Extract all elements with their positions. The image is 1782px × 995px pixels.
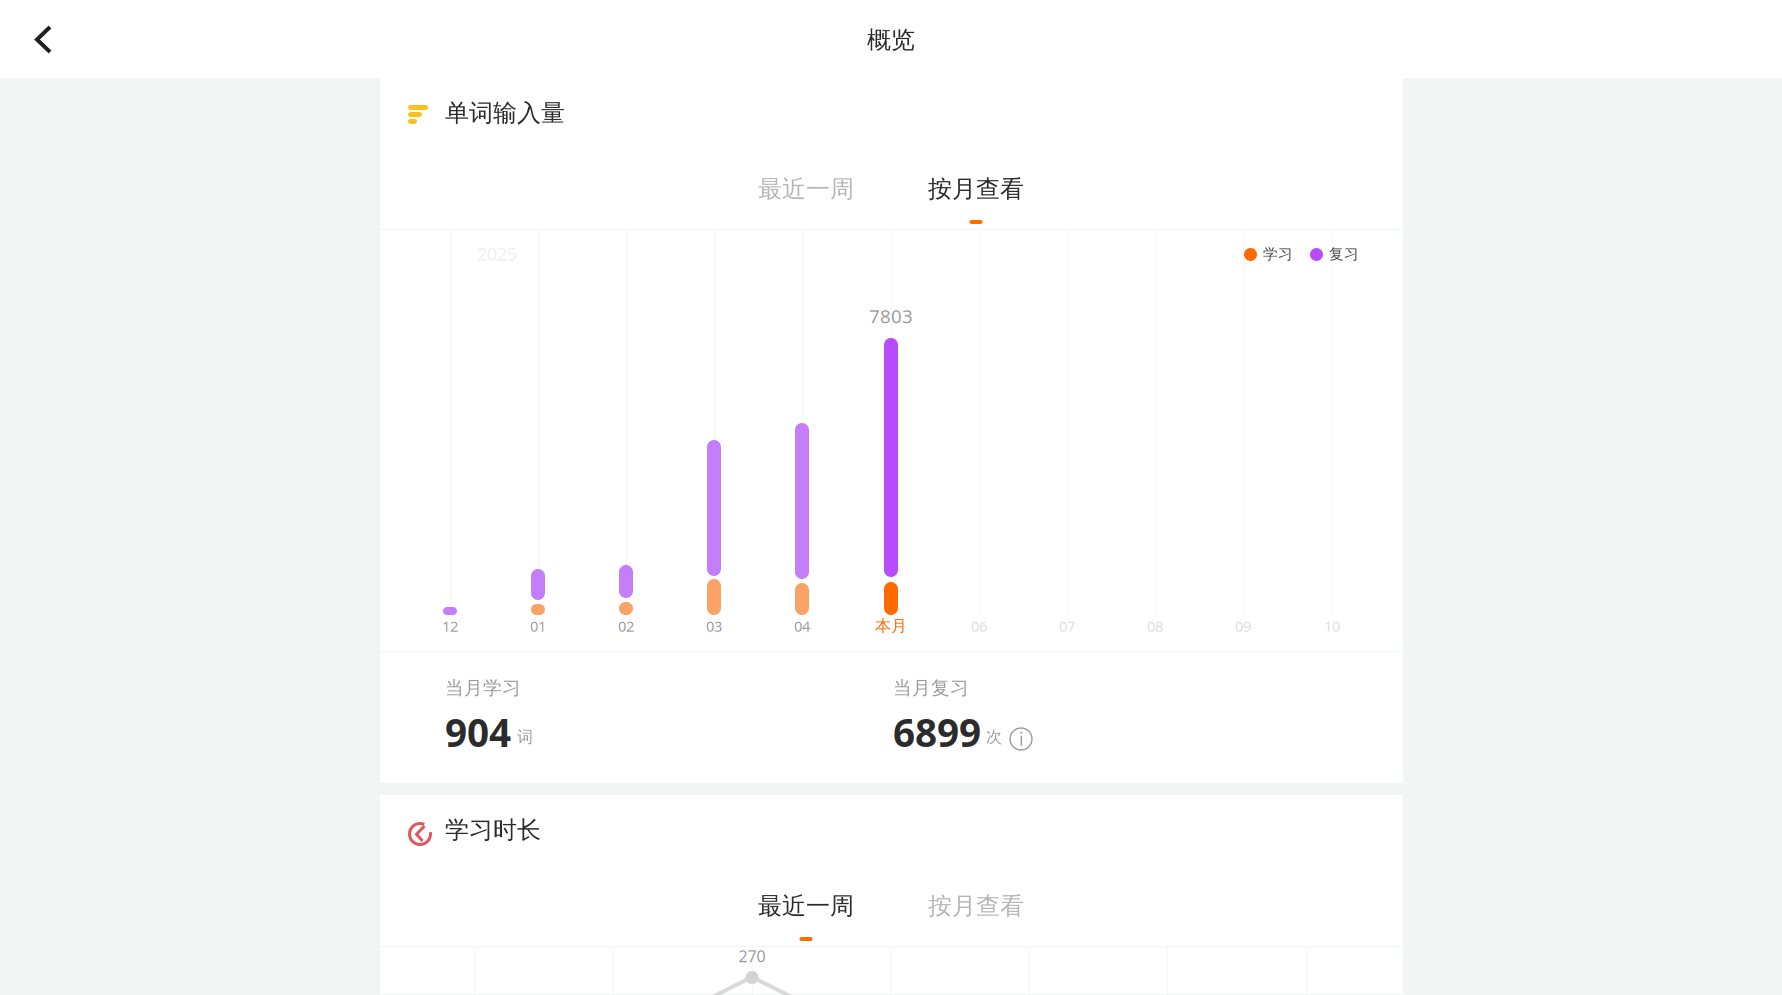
staticText: 02: [618, 616, 634, 636]
staticText: 09: [1235, 616, 1251, 636]
button[interactable]: 返回: [0, 0, 78, 78]
staticText: 07: [1059, 616, 1075, 636]
staticText: 最近一周: [758, 891, 854, 921]
button[interactable]: 最近一周: [721, 151, 891, 229]
staticText: 本月: [875, 616, 907, 636]
staticText: 2025: [477, 242, 517, 265]
button[interactable]: 最近一周: [721, 868, 891, 946]
staticText: 04: [794, 616, 810, 636]
staticText: 08: [1147, 616, 1163, 636]
staticText: 01: [530, 616, 546, 636]
staticText: 10: [1324, 616, 1340, 636]
staticText: 次: [986, 727, 1002, 747]
button[interactable]: 说明: [1008, 726, 1034, 752]
staticText: 学习: [1263, 245, 1293, 263]
staticText: 复习: [1329, 245, 1359, 263]
staticText: 词: [517, 727, 533, 747]
staticText: 904: [445, 706, 511, 758]
staticText: 7803: [869, 304, 913, 328]
staticText: 当月复习: [893, 676, 969, 699]
staticText: 按月查看: [928, 891, 1024, 921]
staticText: 12: [442, 616, 458, 636]
staticText: 学习时长: [445, 815, 541, 845]
staticText: 概览: [867, 25, 915, 55]
staticText: 最近一周: [758, 174, 854, 204]
button[interactable]: 按月查看: [891, 868, 1061, 946]
staticText: 单词输入量: [445, 98, 565, 128]
button[interactable]: 按月查看: [891, 151, 1061, 229]
staticText: 06: [971, 616, 987, 636]
staticText: 270: [738, 945, 765, 967]
staticText: 当月学习: [445, 676, 521, 699]
staticText: 6899: [893, 706, 981, 758]
staticText: i: [1019, 727, 1023, 750]
staticText: 按月查看: [928, 174, 1024, 204]
staticText: 03: [706, 616, 722, 636]
